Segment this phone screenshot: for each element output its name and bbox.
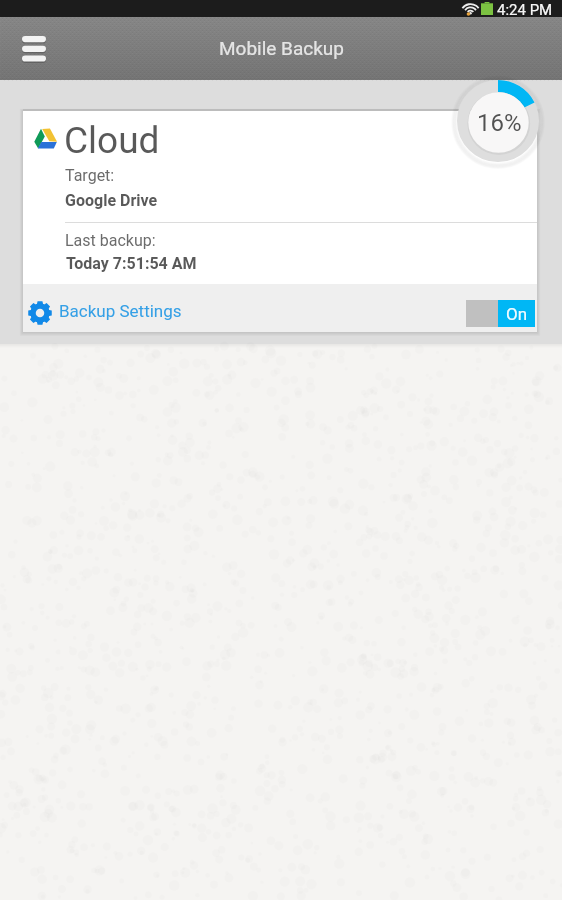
staticText: Google Drive [65,191,158,210]
staticText: Last backup: [65,231,156,250]
button[interactable]: On [466,300,535,327]
button[interactable]: Backup settings [28,288,182,328]
staticText: Cloud [64,119,160,162]
staticText: Today 7:51:54 AM [66,254,197,273]
staticText: Mobile Backup [219,37,345,59]
staticText: On [506,304,528,324]
other: Backup settings [28,301,52,325]
staticText: 4:24 PM [497,1,553,18]
staticText: 16% [477,109,522,137]
staticText: Target: [65,166,115,185]
button[interactable]: Open navigation menu [9,23,55,74]
staticText: Backup Settings [59,301,182,321]
